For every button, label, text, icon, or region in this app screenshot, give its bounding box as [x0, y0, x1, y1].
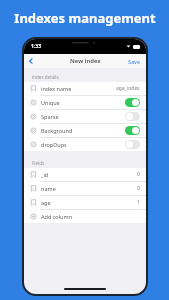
button[interactable]: Sparse — [24, 110, 146, 123]
button[interactable]: dropDups — [125, 140, 140, 149]
staticText: Indexes management — [14, 9, 156, 27]
staticText: dropDups — [41, 141, 67, 148]
button[interactable]: index name — [24, 82, 146, 95]
staticText: Background — [41, 127, 73, 134]
staticText: 0 — [137, 171, 140, 178]
staticText: index details — [32, 74, 59, 80]
staticText: Add column — [41, 213, 73, 220]
staticText: age — [41, 199, 51, 206]
button[interactable]: _id — [24, 168, 146, 181]
button[interactable]: age — [24, 196, 146, 209]
staticText: index name — [41, 85, 72, 92]
button[interactable]: Unique — [125, 98, 140, 107]
button[interactable]: Background — [125, 126, 140, 135]
staticText: 0 — [137, 185, 140, 192]
button[interactable]: Unique — [24, 96, 146, 109]
staticText: Fields — [32, 160, 45, 166]
staticText: Unique — [41, 99, 60, 106]
button[interactable]: Sparse — [125, 112, 140, 121]
staticText: name — [41, 185, 56, 192]
staticText: New index — [70, 57, 101, 65]
staticText: _id — [41, 171, 49, 178]
staticText: 1:33 — [31, 43, 41, 50]
staticText: age_index — [116, 85, 140, 92]
staticText: Save — [128, 58, 141, 65]
button[interactable]: Background — [24, 124, 146, 137]
staticText: Sparse — [41, 113, 59, 120]
button[interactable]: Back — [24, 54, 38, 68]
button[interactable]: name — [24, 182, 146, 195]
button[interactable]: Save — [123, 58, 146, 65]
button[interactable]: Add column — [24, 210, 146, 223]
staticText: 1 — [137, 199, 140, 206]
button[interactable]: dropDups — [24, 138, 146, 151]
